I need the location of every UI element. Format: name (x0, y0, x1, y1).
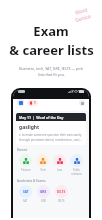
staticText: Exam (33, 22, 69, 40)
staticText: Finance (21, 168, 31, 172)
button[interactable]: gaslight (16, 121, 86, 145)
button[interactable]: IELTS (53, 185, 70, 203)
staticText: Academics & Exams (17, 179, 46, 183)
button[interactable]: SAT (17, 185, 34, 203)
staticText: Genius (74, 13, 93, 24)
staticText: GRE (40, 190, 47, 194)
button[interactable]: GRE (35, 185, 52, 203)
staticText: gaslight (19, 124, 40, 131)
staticText: Tech (40, 168, 46, 172)
staticText: Business, tech, SAT, GRE, IELTS — pick (19, 66, 83, 71)
button[interactable]: Law (51, 154, 68, 172)
staticText: SAT (23, 190, 29, 194)
staticText: IELTS (58, 199, 65, 203)
button[interactable]: Streak (27, 100, 38, 106)
button[interactable]: Finance (17, 154, 34, 172)
button[interactable]: Tech (34, 154, 51, 172)
staticText: Law (57, 168, 62, 172)
button[interactable]: Calendar (17, 99, 24, 106)
staticText: 1 (34, 101, 36, 105)
staticText: lists that fit you. (38, 72, 65, 77)
staticText: Word (74, 6, 89, 17)
staticText: GRE (41, 199, 46, 203)
staticText: & career lists (9, 41, 94, 59)
button[interactable]: Profile (79, 100, 85, 106)
button[interactable]: May 11 | Word of the Day (16, 113, 86, 121)
staticText: SAT (23, 199, 28, 203)
staticText: through persistent denial, misdirection,… (19, 138, 82, 142)
staticText: May 11 | Word of the Day (19, 115, 64, 120)
button[interactable]: Public relations (68, 154, 85, 176)
staticText: IELTS (57, 190, 66, 194)
staticText: v. to make someone question their own sa… (19, 133, 82, 137)
staticText: Public relations (68, 168, 85, 176)
staticText: Recent (17, 148, 27, 152)
